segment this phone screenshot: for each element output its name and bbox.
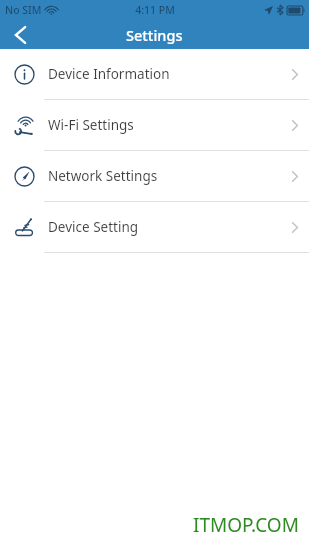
staticText: Network Settings (48, 167, 281, 185)
button[interactable]: Device Setting (0, 202, 309, 252)
button[interactable]: Device Information (0, 49, 309, 99)
staticText: Settings (126, 25, 183, 45)
staticText: ITMOP.COM (193, 512, 299, 538)
staticText: Device Setting (48, 218, 281, 236)
button[interactable]: Wi-Fi Settings (0, 100, 309, 150)
staticText: 4:11 PM (135, 3, 175, 17)
staticText: No SIM (5, 3, 42, 17)
button[interactable]: Network Settings (0, 151, 309, 201)
button[interactable]: Back (0, 20, 40, 49)
staticText: Wi-Fi Settings (48, 116, 281, 134)
staticText: Device Information (48, 65, 281, 83)
